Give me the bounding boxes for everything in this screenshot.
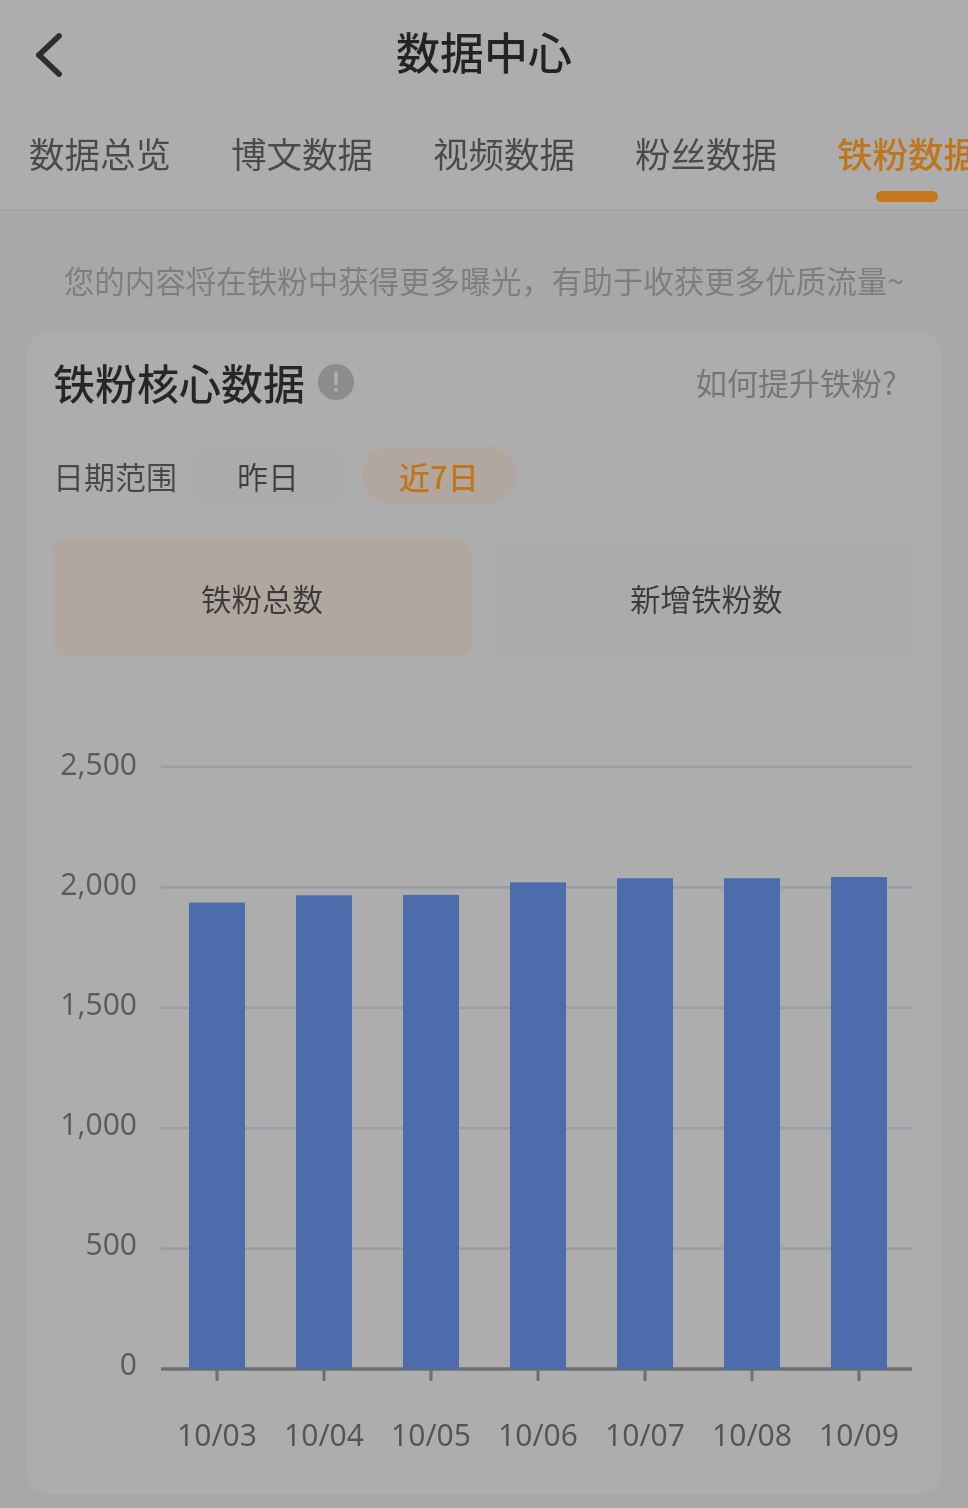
staticText: 10/06: [483, 1414, 593, 1455]
button[interactable]: 新增铁粉数: [497, 539, 915, 657]
staticText: 数据中心: [396, 19, 572, 83]
button[interactable]: 昨日: [190, 447, 345, 504]
staticText: 铁粉核心数据: [53, 351, 306, 412]
staticText: 数据总览: [29, 127, 172, 178]
button[interactable]: 近7日: [362, 447, 516, 504]
button[interactable]: Info: [318, 364, 354, 400]
staticText: 10/04: [269, 1414, 379, 1455]
staticText: 您的内容将在铁粉中获得更多曝光，有助于收获更多优质流量~: [0, 258, 968, 302]
staticText: 10/03: [162, 1414, 272, 1455]
button[interactable]: 粉丝数据: [635, 110, 778, 178]
staticText: 2,000: [27, 863, 137, 904]
staticText: 10/07: [590, 1414, 700, 1455]
staticText: 新增铁粉数: [630, 576, 783, 620]
staticText: 日期范围: [53, 453, 177, 498]
button[interactable]: 视频数据: [433, 110, 576, 178]
staticText: 2,500: [27, 743, 137, 784]
staticText: 昨日: [237, 453, 299, 498]
staticText: 博文数据: [231, 127, 374, 178]
staticText: 粉丝数据: [635, 127, 778, 178]
staticText: 0: [27, 1343, 137, 1384]
staticText: 1,500: [27, 983, 137, 1024]
staticText: 10/09: [804, 1414, 914, 1455]
staticText: 500: [27, 1223, 137, 1264]
button[interactable]: 铁粉总数: [53, 539, 471, 657]
staticText: 10/05: [376, 1414, 486, 1455]
staticText: 铁粉总数: [201, 576, 323, 620]
staticText: 1,000: [27, 1103, 137, 1144]
staticText: 铁粉数据: [837, 127, 968, 178]
button[interactable]: 数据总览: [29, 110, 172, 178]
button[interactable]: 铁粉数据: [837, 110, 968, 178]
button[interactable]: 博文数据: [231, 110, 374, 178]
staticText: 视频数据: [433, 127, 576, 178]
staticText: 近7日: [399, 453, 479, 498]
button[interactable]: Back: [12, 15, 92, 95]
button[interactable]: 如何提升铁粉?: [696, 359, 897, 404]
staticText: 10/08: [697, 1414, 807, 1455]
